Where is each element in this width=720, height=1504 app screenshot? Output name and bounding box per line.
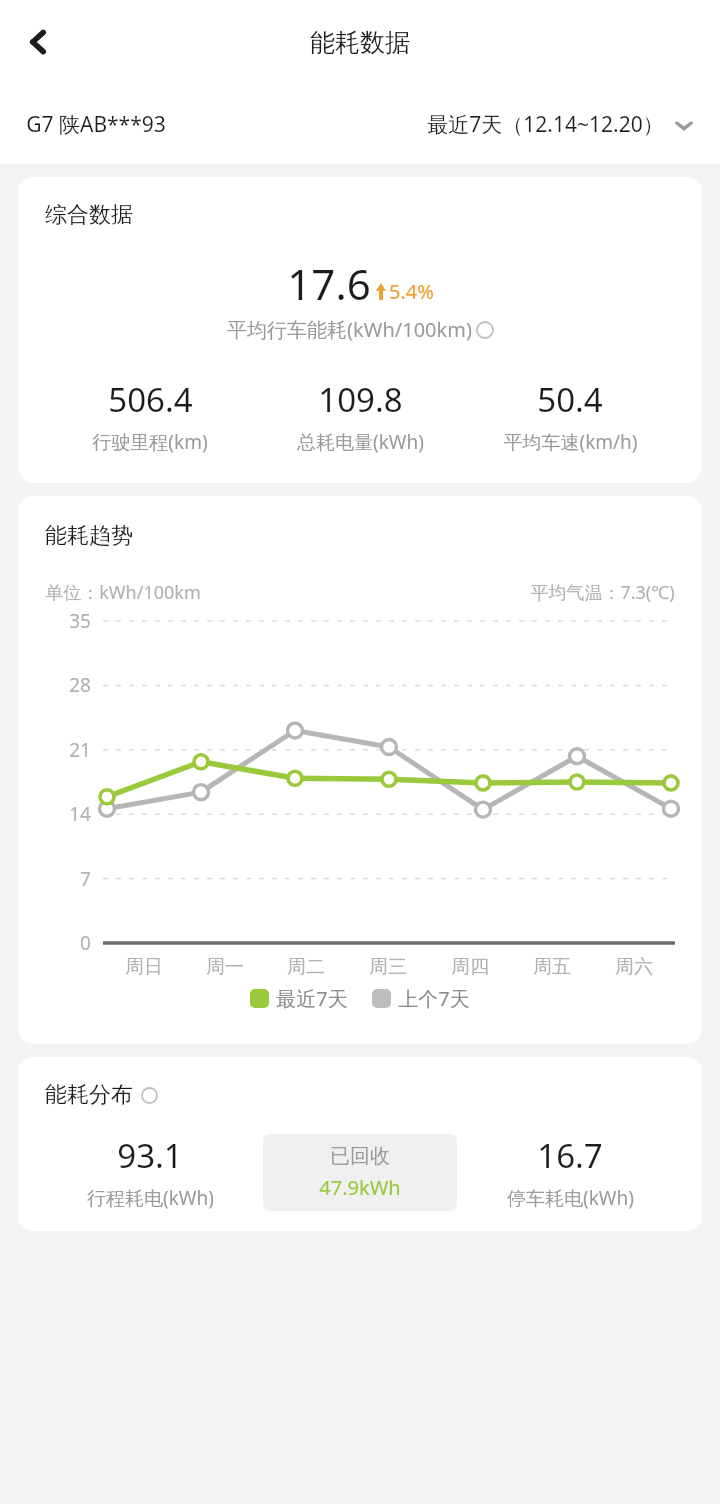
staticText: 能耗数据	[310, 27, 410, 58]
button[interactable]: 93.1	[45, 1133, 255, 1211]
staticText: 16.7	[537, 1133, 603, 1178]
staticText: 47.9kWh	[319, 1174, 401, 1201]
staticText: 109.8	[318, 377, 403, 422]
staticText: 周一	[206, 955, 244, 979]
button[interactable]: 上个7天	[372, 985, 470, 1012]
staticText: 21	[69, 737, 91, 763]
staticText: 平均气温：7.3(℃)	[530, 580, 675, 605]
staticText: 总耗电量(kWh)	[297, 429, 424, 455]
staticText: 周三	[369, 955, 407, 979]
staticText: 行程耗电(kWh)	[87, 1185, 214, 1211]
staticText: 平均车速(km/h)	[503, 429, 638, 455]
staticText: 17.6	[287, 255, 371, 312]
staticText: 行驶里程(km)	[92, 429, 208, 455]
staticText: 50.4	[537, 377, 603, 422]
staticText: 已回收	[330, 1144, 390, 1169]
staticText: 能耗分布	[45, 1081, 133, 1109]
staticText: 能耗趋势	[45, 522, 133, 550]
staticText: 周四	[451, 955, 489, 979]
staticText: G7 陕AB***93	[26, 110, 166, 139]
staticText: 平均行车能耗(kWh/100km)	[227, 316, 472, 343]
button[interactable]: 506.4	[45, 377, 255, 455]
staticText: 93.1	[117, 1133, 183, 1178]
staticText: 上个7天	[398, 985, 470, 1012]
staticText: 周日	[125, 955, 163, 979]
staticText: 0	[80, 930, 91, 956]
staticText: 停车耗电(kWh)	[507, 1185, 634, 1211]
button[interactable]: 能耗分布	[19, 1057, 701, 1231]
button[interactable]: 能耗趋势	[19, 496, 701, 1044]
staticText: 周二	[287, 955, 325, 979]
staticText: 最近7天	[276, 985, 348, 1012]
button[interactable]: Back	[12, 16, 64, 68]
button[interactable]: 50.4	[465, 377, 675, 455]
staticText: 综合数据	[45, 201, 133, 229]
button[interactable]: 综合数据	[19, 177, 701, 483]
staticText: 单位：kWh/100km	[45, 580, 201, 605]
button[interactable]: 最近7天（12.14~12.20）	[427, 110, 698, 139]
button[interactable]: 最近7天	[250, 985, 348, 1012]
staticText: 5.4%	[389, 278, 434, 305]
staticText: 最近7天（12.14~12.20）	[427, 110, 664, 139]
staticText: 14	[69, 801, 91, 827]
button[interactable]: 16.7	[465, 1133, 675, 1211]
staticText: 周五	[533, 955, 571, 979]
staticText: 7	[80, 866, 91, 892]
staticText: 28	[69, 672, 91, 698]
staticText: 周六	[615, 955, 653, 979]
staticText: 506.4	[108, 377, 193, 422]
staticText: 35	[69, 608, 91, 634]
button[interactable]: 109.8	[255, 377, 465, 455]
